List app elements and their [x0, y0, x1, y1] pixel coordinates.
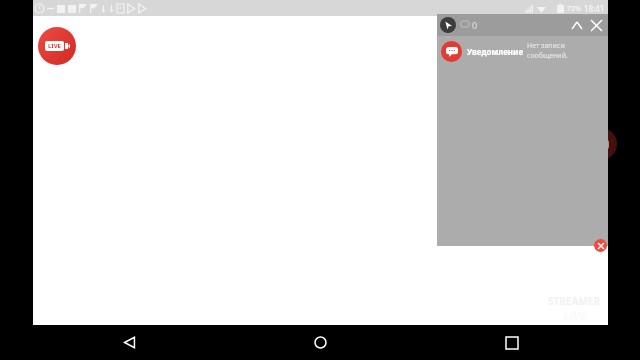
button[interactable]: Recent apps: [416, 325, 607, 360]
staticText: LIVE: [48, 42, 61, 50]
button[interactable]: Close: [587, 16, 605, 34]
button[interactable]: Dismiss panel: [594, 239, 607, 252]
staticText: 0: [472, 19, 478, 31]
button[interactable]: Back: [33, 325, 225, 360]
staticText: Уведомление: [467, 46, 524, 57]
button[interactable]: Minimize: [569, 17, 585, 33]
button[interactable]: Home: [225, 325, 416, 360]
button[interactable]: Live broadcast: [38, 27, 76, 65]
button[interactable]: Уведомление: [437, 36, 608, 66]
staticText: Нет записи сообщений.: [527, 41, 604, 61]
staticText: 72%: [567, 4, 581, 14]
staticText: STREAMER: [548, 294, 600, 308]
button[interactable]: App icon: [440, 17, 456, 33]
staticText: 18:41: [584, 3, 605, 14]
